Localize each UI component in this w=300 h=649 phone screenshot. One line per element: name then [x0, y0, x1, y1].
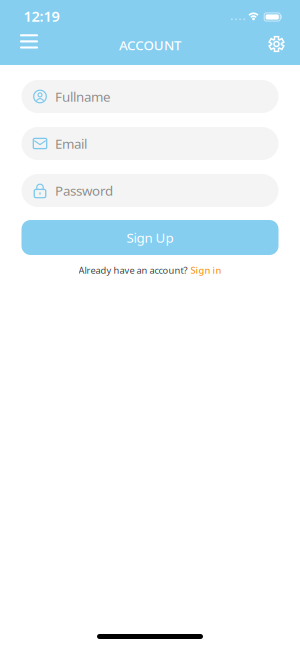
button[interactable]: Fullname [21, 80, 278, 113]
staticText: Fullname [55, 88, 111, 105]
button[interactable]: Sign in [190, 264, 221, 276]
button[interactable]: Password [21, 174, 278, 207]
button[interactable]: Menu [20, 34, 38, 49]
staticText: 12:19 [23, 6, 59, 26]
staticText: Sign Up [126, 229, 173, 246]
staticText: Email [55, 135, 87, 152]
staticText: Already have an account? [78, 264, 187, 276]
button[interactable]: Email [21, 127, 278, 160]
button[interactable]: Sign Up [21, 220, 278, 255]
button[interactable]: Settings [268, 36, 284, 52]
staticText: ACCOUNT [119, 36, 181, 54]
staticText: Password [55, 182, 113, 199]
staticText: Sign in [190, 264, 221, 276]
